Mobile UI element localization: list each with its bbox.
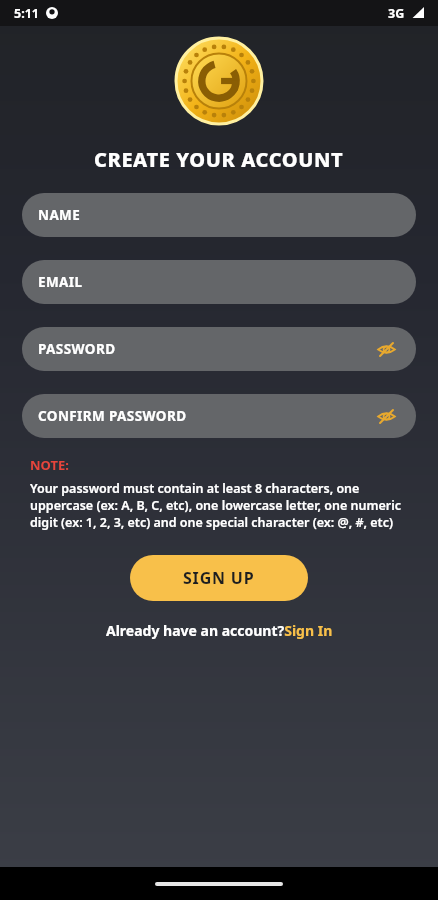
button[interactable]: Show password (374, 337, 398, 361)
staticText: PASSWORD (38, 340, 116, 358)
button[interactable]: NAME (22, 193, 416, 237)
staticText: CREATE YOUR ACCOUNT (94, 146, 344, 173)
button[interactable]: SIGN UP (130, 555, 308, 601)
staticText: Already have an account?Sign In (106, 621, 333, 640)
button[interactable]: Show password (374, 404, 398, 428)
staticText: 3G (388, 5, 405, 22)
staticText: CONFIRM PASSWORD (38, 407, 187, 425)
staticText: 5:11 (14, 5, 39, 22)
button[interactable]: Already have an account?Sign In (106, 621, 333, 640)
button[interactable]: CONFIRM PASSWORD (22, 394, 416, 438)
staticText: NAME (38, 206, 81, 224)
staticText: EMAIL (38, 273, 83, 291)
staticText: Your password must contain at least 8 ch… (30, 480, 408, 531)
button[interactable]: EMAIL (22, 260, 416, 304)
button[interactable]: PASSWORD (22, 327, 416, 371)
staticText: SIGN UP (183, 567, 255, 589)
staticText: NOTE: (30, 456, 69, 474)
